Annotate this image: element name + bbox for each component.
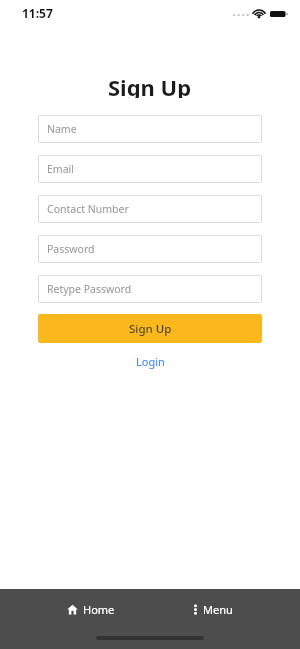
button[interactable]: Contact Number (38, 195, 262, 223)
staticText: Email (47, 162, 74, 176)
button[interactable]: Sign Up (38, 314, 262, 343)
button[interactable]: Retype Password (38, 275, 262, 303)
button[interactable]: Email (38, 155, 262, 183)
staticText: 11:57 (22, 5, 53, 21)
button[interactable]: Home (67, 597, 115, 621)
staticText: Retype Password (47, 282, 132, 296)
staticText: Contact Number (47, 202, 129, 216)
staticText: Home (83, 602, 115, 617)
staticText: Name (47, 122, 77, 136)
staticText: Sign Up (129, 321, 172, 337)
staticText: Password (47, 242, 95, 256)
button[interactable]: Name (38, 115, 262, 143)
button[interactable]: Menu (193, 597, 233, 621)
button[interactable]: Password (38, 235, 262, 263)
staticText: Sign Up (108, 72, 192, 98)
button[interactable]: Login (38, 352, 262, 370)
staticText: Login (136, 354, 165, 369)
staticText: Menu (203, 602, 233, 617)
